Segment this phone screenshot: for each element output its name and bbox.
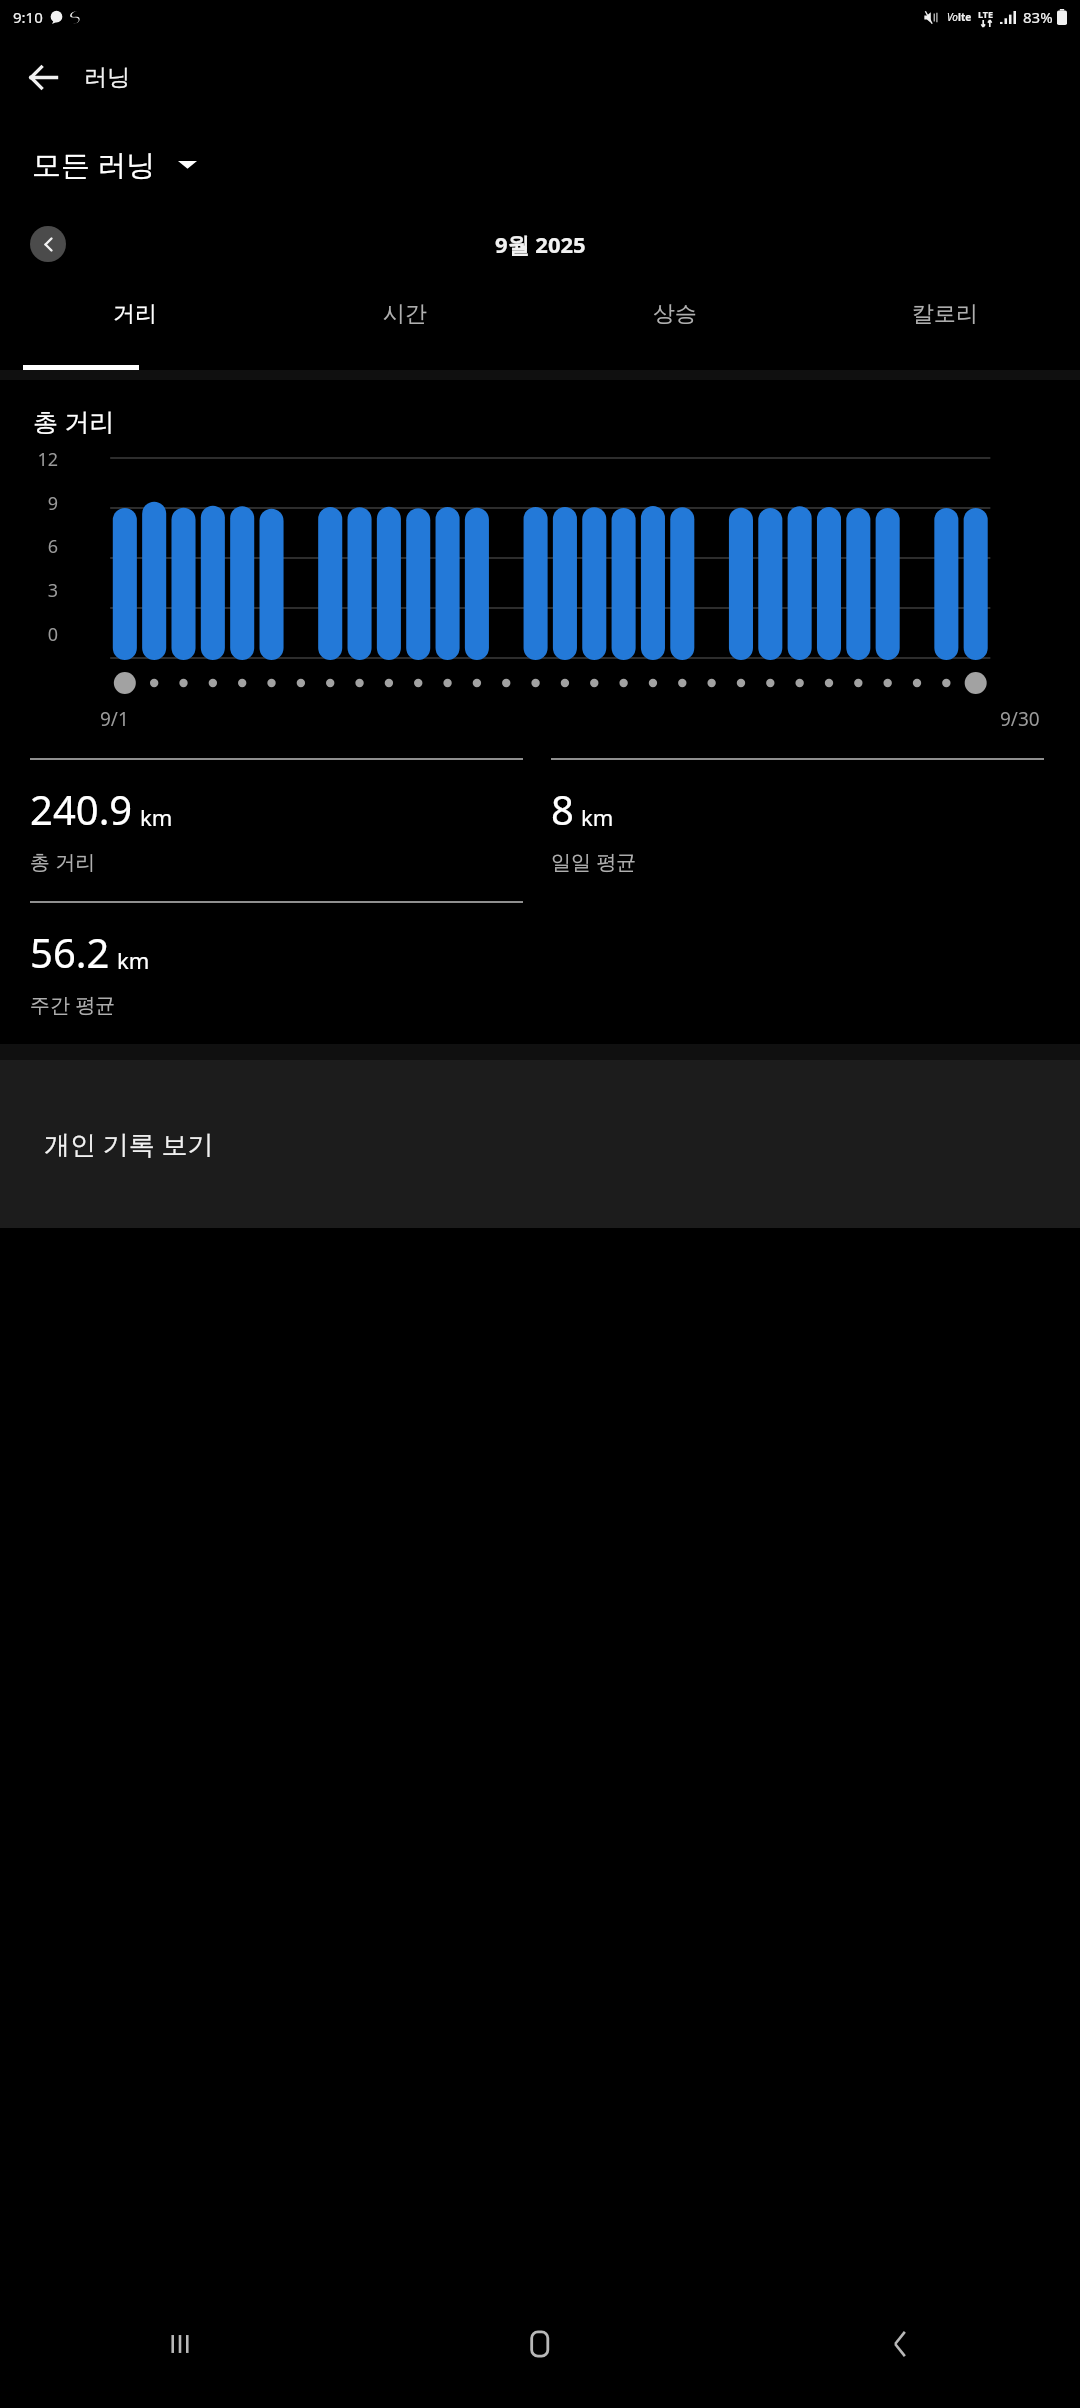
button[interactable]: 시간 (270, 280, 540, 370)
staticText: 시간 (383, 300, 427, 328)
staticText: lte (958, 10, 972, 24)
staticText: km (140, 802, 173, 832)
staticText: 9/30 (1000, 706, 1040, 732)
staticText: km (117, 945, 150, 975)
staticText: 주간 평균 (30, 991, 116, 1018)
staticText: 0 (16, 622, 58, 647)
staticText: 8 (551, 782, 574, 836)
button[interactable]: 240.9 (30, 758, 551, 901)
button[interactable]: Home (360, 2280, 720, 2408)
staticText: 12 (16, 447, 58, 472)
button[interactable]: 칼로리 (810, 280, 1080, 370)
staticText: 모든 러닝 (32, 144, 156, 184)
staticText: 6 (16, 534, 58, 559)
button[interactable]: 56.2 (30, 901, 551, 1044)
button[interactable]: 상승 (540, 280, 810, 370)
staticText: 9/1 (100, 706, 129, 732)
button[interactable]: 개인 기록 보기 (0, 1060, 1080, 1228)
staticText: 총 거리 (30, 848, 96, 875)
staticText: 일일 평균 (551, 848, 637, 875)
staticText: 9 (16, 491, 58, 516)
button[interactable]: 8 (551, 758, 1072, 901)
staticText: 83% (1023, 7, 1053, 27)
button[interactable]: Previous month (30, 226, 66, 262)
staticText: 상승 (653, 300, 697, 328)
button[interactable]: 모든 러닝 (0, 120, 1080, 208)
staticText: 240.9 (30, 782, 133, 836)
button[interactable]: Recent apps (0, 2280, 360, 2408)
staticText: LTE (978, 8, 994, 20)
staticText: 9:10 (13, 7, 43, 27)
staticText: km (581, 802, 614, 832)
button[interactable]: Back (16, 50, 70, 104)
staticText: 3 (16, 578, 58, 603)
staticText: 개인 기록 보기 (44, 1126, 214, 1162)
staticText: 거리 (113, 300, 157, 328)
staticText: 56.2 (30, 925, 110, 979)
staticText: 총 거리 (33, 404, 115, 438)
button[interactable]: 거리 (0, 280, 270, 370)
staticText: 러닝 (84, 63, 130, 92)
button[interactable]: Back (720, 2280, 1080, 2408)
staticText: 칼로리 (912, 300, 978, 328)
staticText: Vo (947, 10, 958, 24)
staticText: 9월 2025 (495, 229, 586, 259)
